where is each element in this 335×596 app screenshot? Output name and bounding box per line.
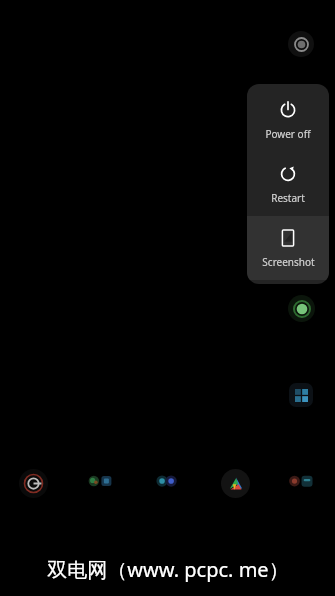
button[interactable]: Power off [247,88,329,152]
button[interactable]: App shortcut [288,31,314,57]
button[interactable]: Google search [19,469,48,498]
button[interactable]: Grid app [289,383,313,407]
button[interactable]: Restart [247,152,329,216]
button[interactable]: Widget shortcuts [86,470,114,494]
staticText: Restart [271,191,305,205]
button[interactable]: Screenshot [247,216,329,280]
button[interactable]: Shortcuts [155,470,181,494]
button[interactable]: More shortcuts [288,470,314,494]
button[interactable]: Drive [221,469,250,498]
button[interactable]: Green app [288,295,315,322]
staticText: Power off [265,127,311,141]
staticText: 双电网（www. pcpc. me） [47,556,289,583]
staticText: Screenshot [262,255,315,269]
